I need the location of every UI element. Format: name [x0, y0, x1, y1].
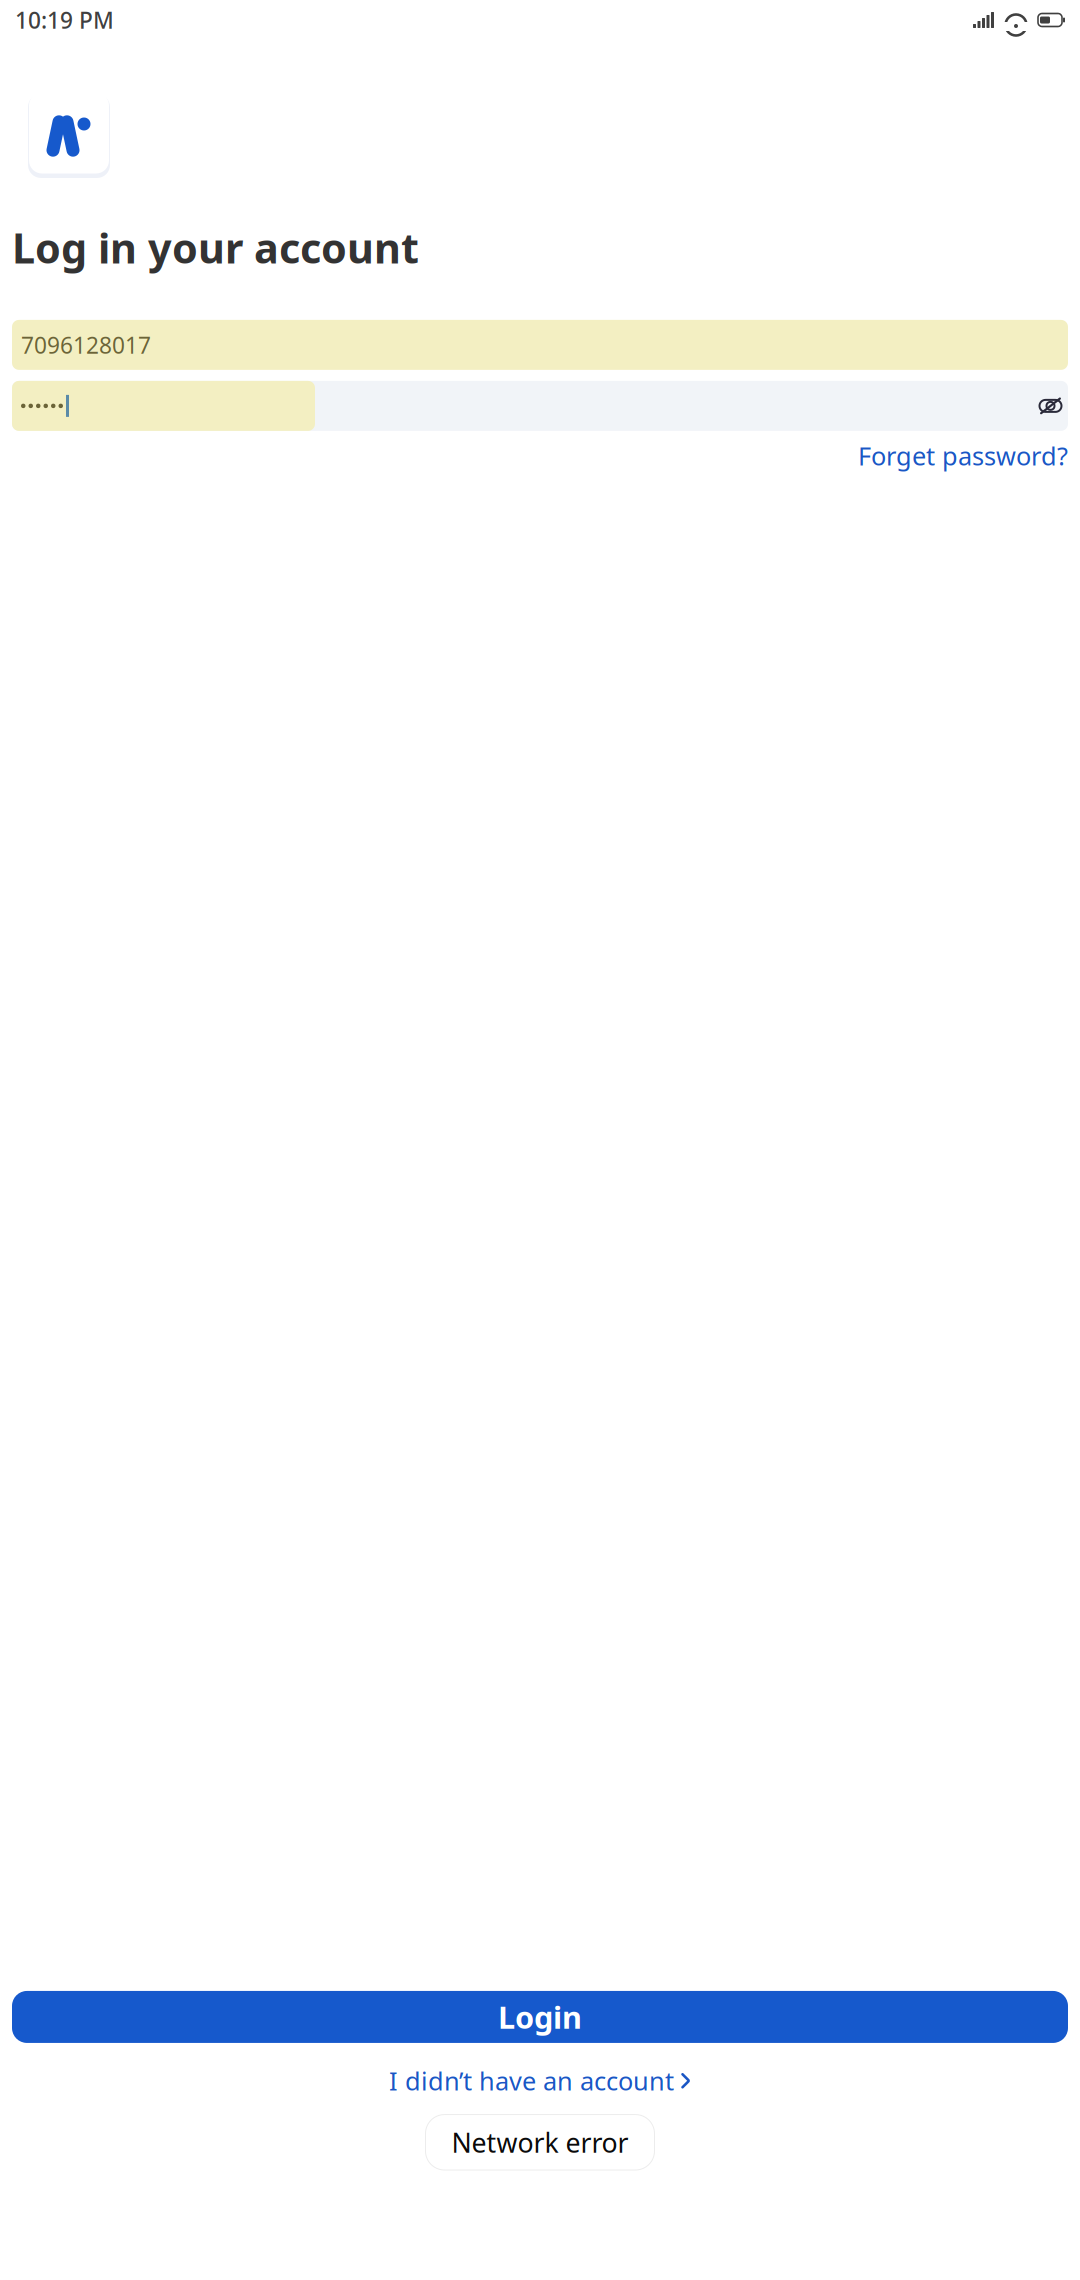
staticText: 7096128017 — [21, 330, 151, 360]
button[interactable]: Login — [12, 1991, 1068, 2043]
staticText: I didn’t have an account — [389, 2064, 674, 2097]
staticText: Forget password? — [858, 439, 1068, 472]
button[interactable]: I didn’t have an account — [379, 2059, 701, 2102]
button[interactable]: Show password — [1033, 381, 1068, 431]
staticText: 10:19 PM — [15, 5, 114, 35]
staticText: Login — [498, 1997, 582, 2037]
button[interactable]: Forget password? — [858, 439, 1068, 472]
staticText: Network error — [451, 2125, 628, 2160]
staticText: Log in your account — [12, 220, 419, 275]
